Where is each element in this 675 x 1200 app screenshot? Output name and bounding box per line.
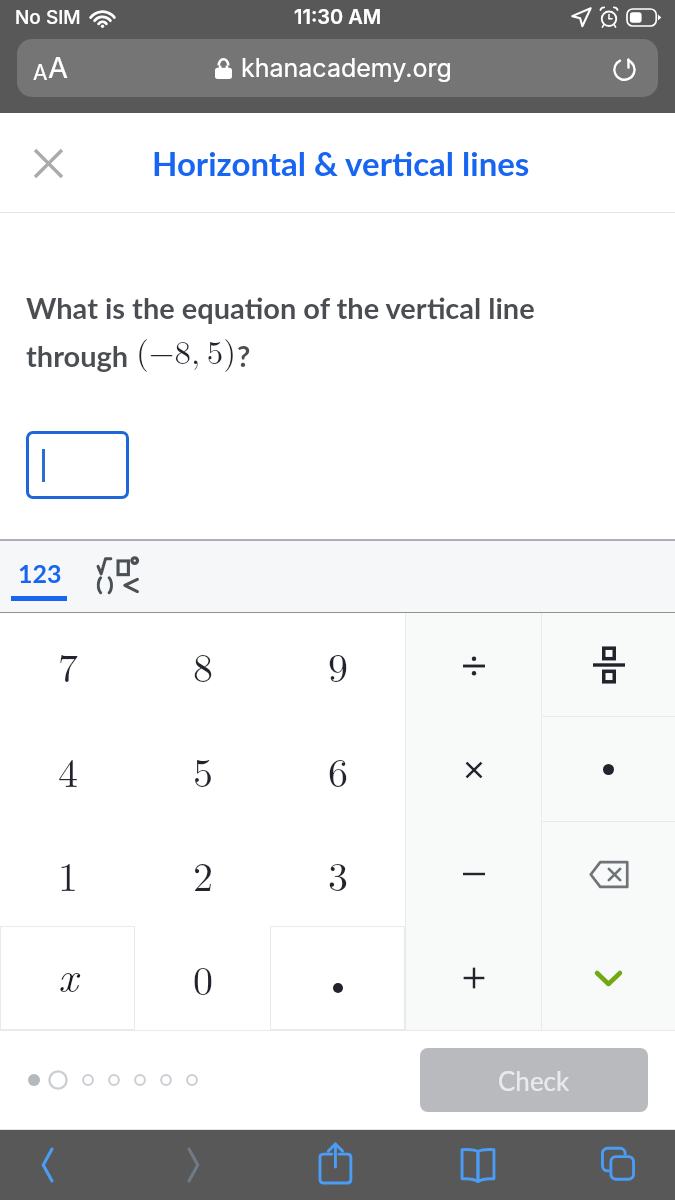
staticText: ? [237,338,251,373]
staticText: 4 [58,742,78,799]
button[interactable] [26,431,129,499]
button[interactable] [270,926,405,1030]
button[interactable]: 123 [0,541,78,612]
staticText: 5 [193,742,213,799]
button[interactable]: Close [26,141,70,185]
staticText: khanacademy.org [241,53,452,83]
staticText: 0 [193,950,213,1007]
button[interactable]: Check [420,1048,648,1112]
button[interactable]: Back [5,1130,89,1200]
staticText: No SIM [15,6,81,29]
button[interactable]: Fraction [542,613,675,716]
button[interactable]: Text size [33,50,69,85]
staticText: through [26,338,136,373]
staticText: 2 [193,846,213,903]
button[interactable]: Minus [406,822,541,926]
staticText: x [58,944,78,1005]
button[interactable]: Multiply [406,718,541,822]
staticText: Check [498,1065,570,1096]
button[interactable]: 3 [270,822,405,926]
staticText: What is the equation of the vertical lin… [26,290,535,325]
staticText: (−8, 5) [136,327,237,374]
button[interactable]: Backspace [542,822,675,926]
button[interactable]: Plus [406,926,541,1030]
button[interactable]: Divide [406,613,541,718]
button[interactable]: 5 [135,718,270,822]
button[interactable]: 0 [135,926,270,1030]
staticText: 123 [18,558,62,588]
button[interactable]: Reload [606,49,644,87]
staticText: 1 [58,846,78,903]
button[interactable]: 9 [270,613,405,718]
button[interactable]: x [0,926,135,1030]
button[interactable]: 1 [0,822,135,926]
button[interactable]: 8 [135,613,270,718]
staticText: 8 [193,637,213,694]
button[interactable]: Decimal point [542,717,675,821]
button[interactable]: 2 [135,822,270,926]
staticText: 3 [328,846,348,903]
staticText: Horizontal & vertical lines [152,143,530,183]
staticText: 6 [328,742,348,799]
button[interactable]: Math symbols [78,541,156,612]
staticText: 11:30 AM [294,5,382,29]
staticText: A [33,60,48,85]
button[interactable]: 4 [0,718,135,822]
staticText: A [48,50,69,85]
button[interactable]: Forward [152,1130,236,1200]
button[interactable]: Tabs [576,1130,660,1200]
button[interactable]: Bookmarks [436,1130,520,1200]
button[interactable]: Text size [17,39,658,97]
button[interactable]: 6 [270,718,405,822]
button[interactable]: 7 [0,613,135,718]
button[interactable]: Share [295,1130,379,1200]
button[interactable]: Dismiss keypad [542,926,675,1030]
staticText: 9 [328,637,348,694]
staticText: 7 [58,637,78,694]
